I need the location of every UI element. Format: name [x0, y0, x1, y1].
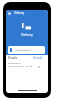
button[interactable]: View all	[33, 56, 43, 60]
button[interactable]: Track shipment	[8, 46, 45, 54]
staticText: Delivery	[14, 11, 25, 15]
staticText: Delivery	[21, 33, 33, 37]
staticText: Track shipment	[15, 49, 31, 52]
button[interactable]: Back	[6, 10, 12, 16]
staticText: Shipping to	[8, 61, 21, 64]
staticText: 123 Main Street, Apt 4B	[8, 65, 33, 68]
staticText: Details	[8, 56, 18, 60]
button[interactable]: Edit	[37, 65, 41, 69]
